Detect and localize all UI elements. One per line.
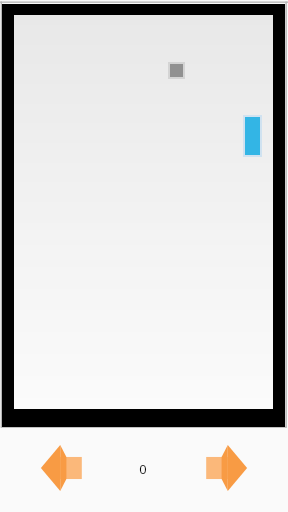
button[interactable]: Move right bbox=[204, 444, 248, 492]
button[interactable]: Move left bbox=[40, 444, 84, 492]
button[interactable]: 0 bbox=[123, 459, 163, 479]
staticText: 0 bbox=[139, 460, 147, 478]
